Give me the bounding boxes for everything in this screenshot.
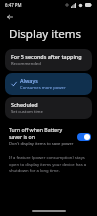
staticText: Recommended (11, 61, 41, 67)
button[interactable]: Turn off when Battery saver is on (0, 123, 97, 150)
button[interactable]: Back (5, 12, 15, 22)
button[interactable]: For 5 seconds after tapping (5, 49, 92, 71)
staticText: Set custom time (11, 109, 43, 115)
staticText: Scheduled (11, 101, 38, 108)
button[interactable]: Always (5, 73, 92, 95)
staticText: Don't display items to save power (9, 141, 74, 147)
staticText: Turn off when Battery saver is on (9, 126, 74, 140)
staticText: Consumes more power (20, 85, 66, 91)
staticText: Display items (9, 26, 82, 42)
staticText: If a feature (power consumption) stays o… (9, 155, 88, 173)
staticText: For 5 seconds after tapping (11, 53, 82, 60)
staticText: 6:47 PM (5, 2, 22, 8)
button[interactable]: Scheduled (5, 97, 92, 119)
staticText: Always (20, 77, 38, 84)
button[interactable]: Turn off when Battery saver is on (77, 133, 91, 141)
